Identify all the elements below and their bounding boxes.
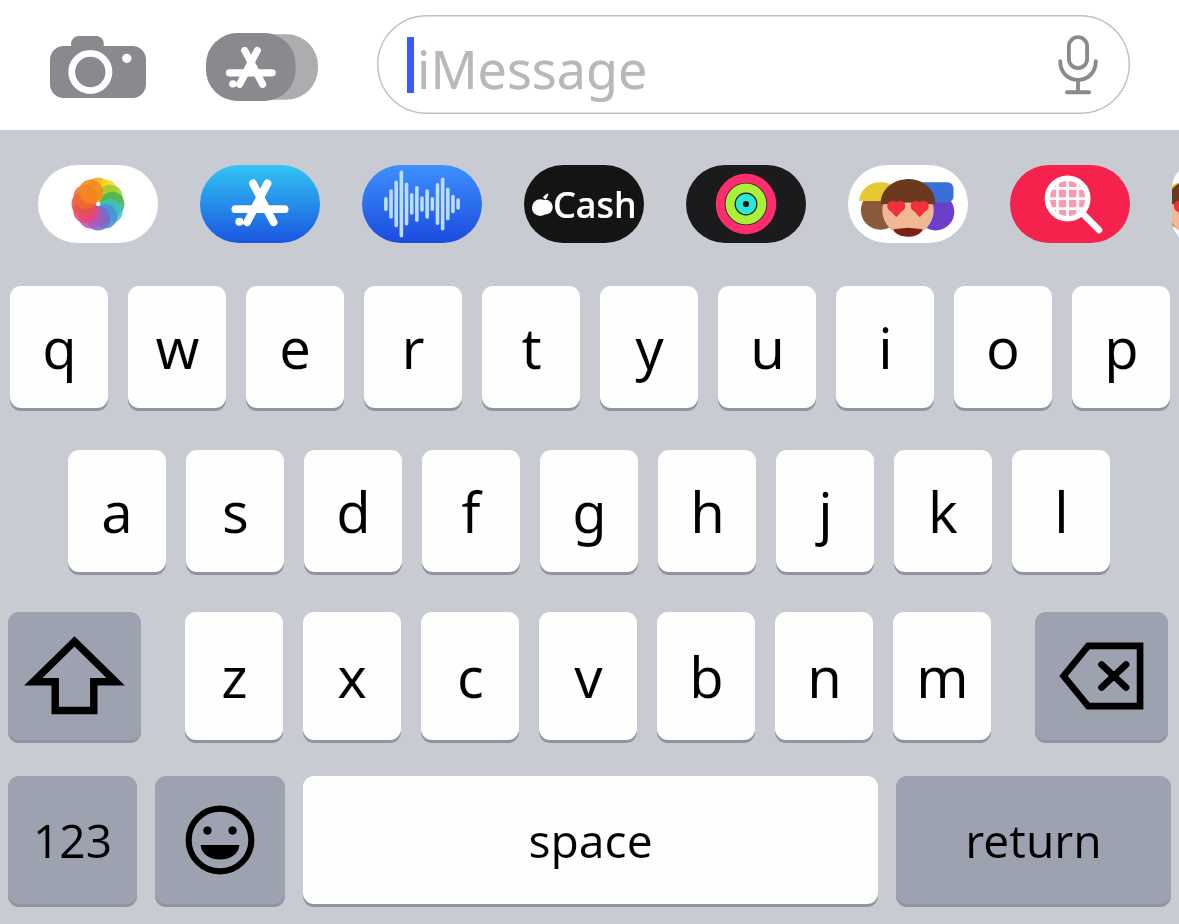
button[interactable]: m xyxy=(893,612,991,744)
staticText: Cash xyxy=(553,180,637,229)
staticText: b xyxy=(689,638,724,714)
staticText: i xyxy=(878,309,893,385)
button[interactable]: Apps xyxy=(206,33,318,101)
button[interactable]: 123 xyxy=(8,776,137,908)
staticText: s xyxy=(222,473,249,549)
button[interactable]: w xyxy=(128,286,226,412)
button[interactable]: Dictate xyxy=(1054,34,1102,96)
staticText: f xyxy=(461,473,481,549)
button[interactable]: Images xyxy=(1010,165,1130,243)
staticText: w xyxy=(155,309,200,385)
button[interactable]: Shift xyxy=(8,612,141,744)
staticText: l xyxy=(1054,473,1069,549)
staticText: return xyxy=(965,809,1102,872)
button[interactable]: v xyxy=(539,612,637,744)
button[interactable]: n xyxy=(775,612,873,744)
button[interactable]: j xyxy=(776,450,874,576)
staticText: iMessage xyxy=(417,33,648,104)
button[interactable]: Memoji xyxy=(848,165,968,243)
button[interactable]: Apple Cash xyxy=(524,165,644,243)
button[interactable]: r xyxy=(364,286,462,412)
button[interactable]: Camera xyxy=(50,36,146,98)
button[interactable]: Photos xyxy=(38,165,158,243)
button[interactable]: c xyxy=(421,612,519,744)
staticText: c xyxy=(457,638,484,714)
button[interactable]: Audio Message xyxy=(362,165,482,243)
button[interactable]: App Store xyxy=(200,165,320,243)
button[interactable]: f xyxy=(422,450,520,576)
button[interactable]: k xyxy=(894,450,992,576)
button[interactable]: x xyxy=(303,612,401,744)
button[interactable]: e xyxy=(246,286,344,412)
staticText: o xyxy=(986,309,1020,385)
staticText: a xyxy=(101,473,133,549)
staticText: v xyxy=(574,638,603,714)
staticText: h xyxy=(690,473,725,549)
button[interactable]: b xyxy=(657,612,755,744)
button[interactable]: iMessage xyxy=(377,15,1130,114)
button[interactable]: h xyxy=(658,450,756,576)
staticText: y xyxy=(635,309,664,385)
button[interactable]: o xyxy=(954,286,1052,412)
button[interactable]: y xyxy=(600,286,698,412)
staticText: g xyxy=(572,473,607,549)
staticText: q xyxy=(42,309,77,385)
button[interactable]: i xyxy=(836,286,934,412)
button[interactable]: l xyxy=(1012,450,1110,576)
staticText: space xyxy=(528,809,653,872)
button[interactable]: p xyxy=(1072,286,1170,412)
button[interactable]: Backspace xyxy=(1035,612,1168,744)
button[interactable]: space xyxy=(303,776,878,908)
staticText: n xyxy=(807,638,842,714)
staticText: d xyxy=(336,473,371,549)
staticText: m xyxy=(916,638,969,714)
button[interactable]: Emoji xyxy=(155,776,285,908)
staticText: x xyxy=(337,638,367,714)
button[interactable]: t xyxy=(482,286,580,412)
button[interactable]: q xyxy=(10,286,108,412)
staticText: t xyxy=(521,309,542,385)
button[interactable]: More xyxy=(1172,165,1179,243)
button[interactable]: u xyxy=(718,286,816,412)
staticText: j xyxy=(818,473,833,549)
staticText: e xyxy=(279,309,311,385)
staticText: z xyxy=(221,638,248,714)
button[interactable]: z xyxy=(185,612,283,744)
staticText: 123 xyxy=(33,809,112,872)
button[interactable]: return xyxy=(896,776,1171,908)
button[interactable]: Fitness xyxy=(686,165,806,243)
staticText: k xyxy=(928,473,958,549)
button[interactable]: a xyxy=(68,450,166,576)
staticText: u xyxy=(750,309,785,385)
button[interactable]: d xyxy=(304,450,402,576)
button[interactable]: s xyxy=(186,450,284,576)
staticText: p xyxy=(1104,309,1139,385)
button[interactable]: g xyxy=(540,450,638,576)
staticText: r xyxy=(401,309,425,385)
